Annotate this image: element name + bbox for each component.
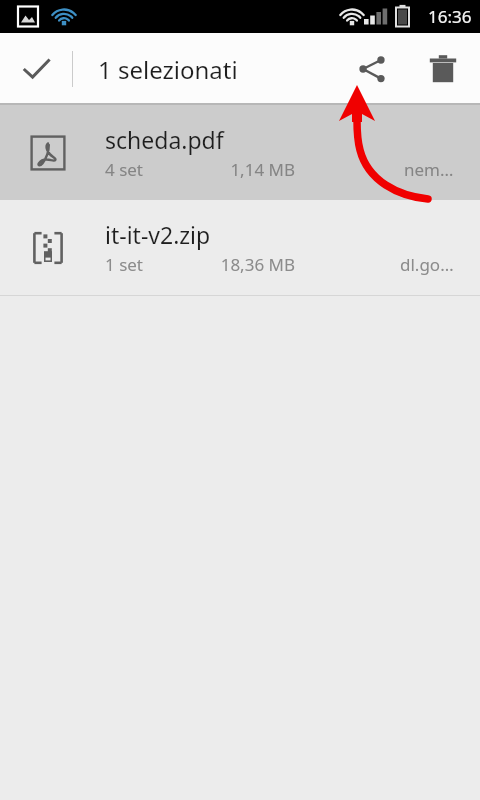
button[interactable]: Condividi xyxy=(338,33,406,105)
staticText: 4 set xyxy=(105,158,144,181)
button[interactable]: Elimina xyxy=(406,33,480,105)
staticText: 1 selezionati xyxy=(98,53,238,86)
button[interactable]: it-it-v2.zip xyxy=(0,200,480,295)
staticText: 1,14 MB xyxy=(230,158,295,181)
staticText: dl.go… xyxy=(400,253,454,276)
staticText: 18,36 MB xyxy=(220,253,295,276)
button[interactable]: Fine selezione xyxy=(0,33,72,105)
button[interactable]: scheda.pdf xyxy=(0,105,480,200)
staticText: scheda.pdf xyxy=(105,124,224,155)
staticText: it-it-v2.zip xyxy=(105,219,211,250)
staticText: 16:36 xyxy=(428,5,472,28)
staticText: 1 set xyxy=(105,253,144,276)
staticText: nem… xyxy=(404,158,454,181)
